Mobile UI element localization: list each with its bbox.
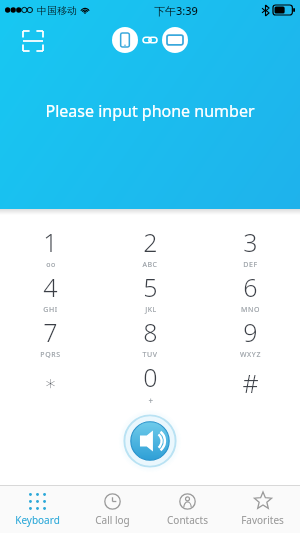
staticText: 2 [143,225,158,259]
staticText: Please input phone number [0,100,300,122]
staticText: 0 [143,360,158,394]
staticText: Keyboard [15,513,60,527]
staticText: ABC [142,260,158,270]
staticText: 4 [43,270,58,304]
staticText: Call log [95,513,130,527]
staticText: PQRS [40,350,61,360]
staticText: Favorites [241,513,284,527]
button[interactable]: Call log [75,486,150,533]
staticText: ∗ [44,371,57,394]
button[interactable]: Phone device [112,27,138,53]
button[interactable]: 9 [200,315,300,360]
staticText: 3 [243,225,258,259]
staticText: 1 [43,225,58,259]
button[interactable]: Keyboard [0,486,75,533]
staticText: MNO [241,305,260,315]
staticText: 6 [243,270,258,304]
staticText: # [242,366,259,400]
staticText: DEF [243,260,258,270]
staticText: 中国移动 [37,4,77,17]
button[interactable]: ∗ [0,360,100,405]
button[interactable]: 2 [100,225,200,270]
staticText: JKL [145,305,157,315]
staticText: + [148,395,154,405]
button[interactable]: 5 [100,270,200,315]
button[interactable]: 3 [200,225,300,270]
staticText: WXYZ [240,350,261,360]
button[interactable]: 6 [200,270,300,315]
button[interactable]: Contacts [150,486,225,533]
button[interactable]: # [200,360,300,405]
button[interactable]: 4 [0,270,100,315]
staticText: 下午3:39 [154,3,198,18]
staticText: 5 [143,270,158,304]
staticText: 9 [243,315,258,349]
button[interactable]: Call [118,409,182,473]
staticText: oo [46,260,56,270]
button[interactable]: 7 [0,315,100,360]
staticText: GHI [43,305,58,315]
button[interactable]: 1 [0,225,100,270]
button[interactable]: 8 [100,315,200,360]
staticText: Contacts [167,513,208,527]
button[interactable]: Cast to screen [162,27,188,53]
button[interactable]: Favorites [225,486,300,533]
staticText: TUV [142,350,158,360]
button[interactable]: Scan code [20,28,46,54]
button[interactable]: 0 [100,360,200,405]
staticText: 7 [43,315,58,349]
staticText: 8 [143,315,158,349]
